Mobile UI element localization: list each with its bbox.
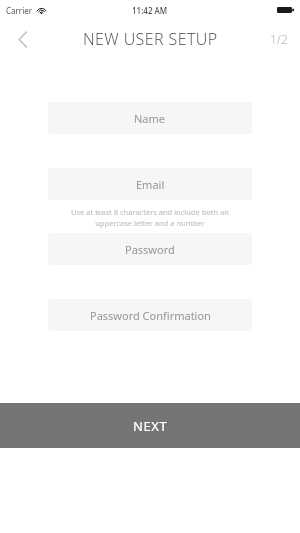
button[interactable]: Back bbox=[8, 24, 38, 54]
staticText: Name bbox=[134, 111, 166, 126]
staticText: 11:42 AM bbox=[132, 5, 168, 16]
button[interactable]: NEXT bbox=[0, 403, 300, 448]
button[interactable]: Email bbox=[48, 168, 252, 200]
button[interactable]: Password Confirmation bbox=[48, 299, 252, 331]
button[interactable]: Password bbox=[48, 233, 252, 265]
staticText: NEXT bbox=[133, 417, 168, 435]
staticText: Carrier bbox=[6, 5, 33, 16]
button[interactable]: Name bbox=[48, 102, 252, 134]
staticText: Email bbox=[136, 177, 165, 192]
staticText: 1/2 bbox=[270, 31, 288, 47]
staticText: Use at least 8 characters and include bo… bbox=[52, 207, 248, 228]
staticText: NEW USER SETUP bbox=[83, 28, 218, 50]
staticText: Password bbox=[125, 242, 175, 257]
staticText: Password Confirmation bbox=[90, 308, 211, 323]
